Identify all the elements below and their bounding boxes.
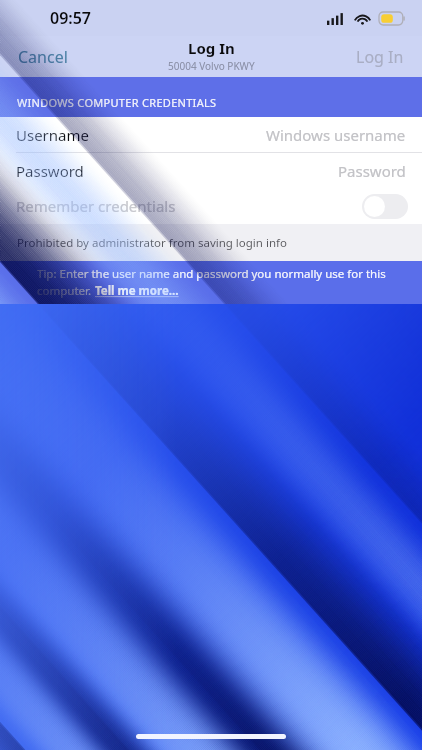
staticText: Log In	[188, 38, 235, 58]
staticText: Password	[338, 161, 406, 181]
button[interactable]: Tell me more…	[95, 283, 179, 299]
staticText: Cancel	[18, 46, 68, 68]
staticText: Username	[16, 125, 89, 145]
staticText: Log In	[356, 46, 404, 68]
staticText: Remember credentials	[16, 196, 176, 216]
button[interactable]: Password	[0, 153, 422, 188]
staticText: 50004 Volvo PKWY	[168, 59, 255, 73]
button[interactable]: Tip: Enter the user name and password yo…	[0, 261, 422, 304]
staticText: Tip: Enter the user name and password yo…	[37, 266, 386, 282]
staticText: WINDOWS COMPUTER CREDENTIALS	[17, 95, 217, 110]
button[interactable]: Remember credentials	[0, 188, 422, 224]
staticText: Prohibited by administrator from saving …	[17, 235, 287, 251]
button[interactable]: Username	[0, 117, 422, 152]
staticText: Windows username	[266, 125, 406, 145]
other: Remember credentials toggle, off	[362, 194, 408, 219]
button[interactable]: Log In	[344, 40, 416, 74]
staticText: Password	[16, 161, 84, 181]
staticText: computer.	[37, 283, 95, 299]
staticText: 09:57	[50, 7, 92, 29]
button[interactable]: Cancel	[6, 40, 80, 74]
